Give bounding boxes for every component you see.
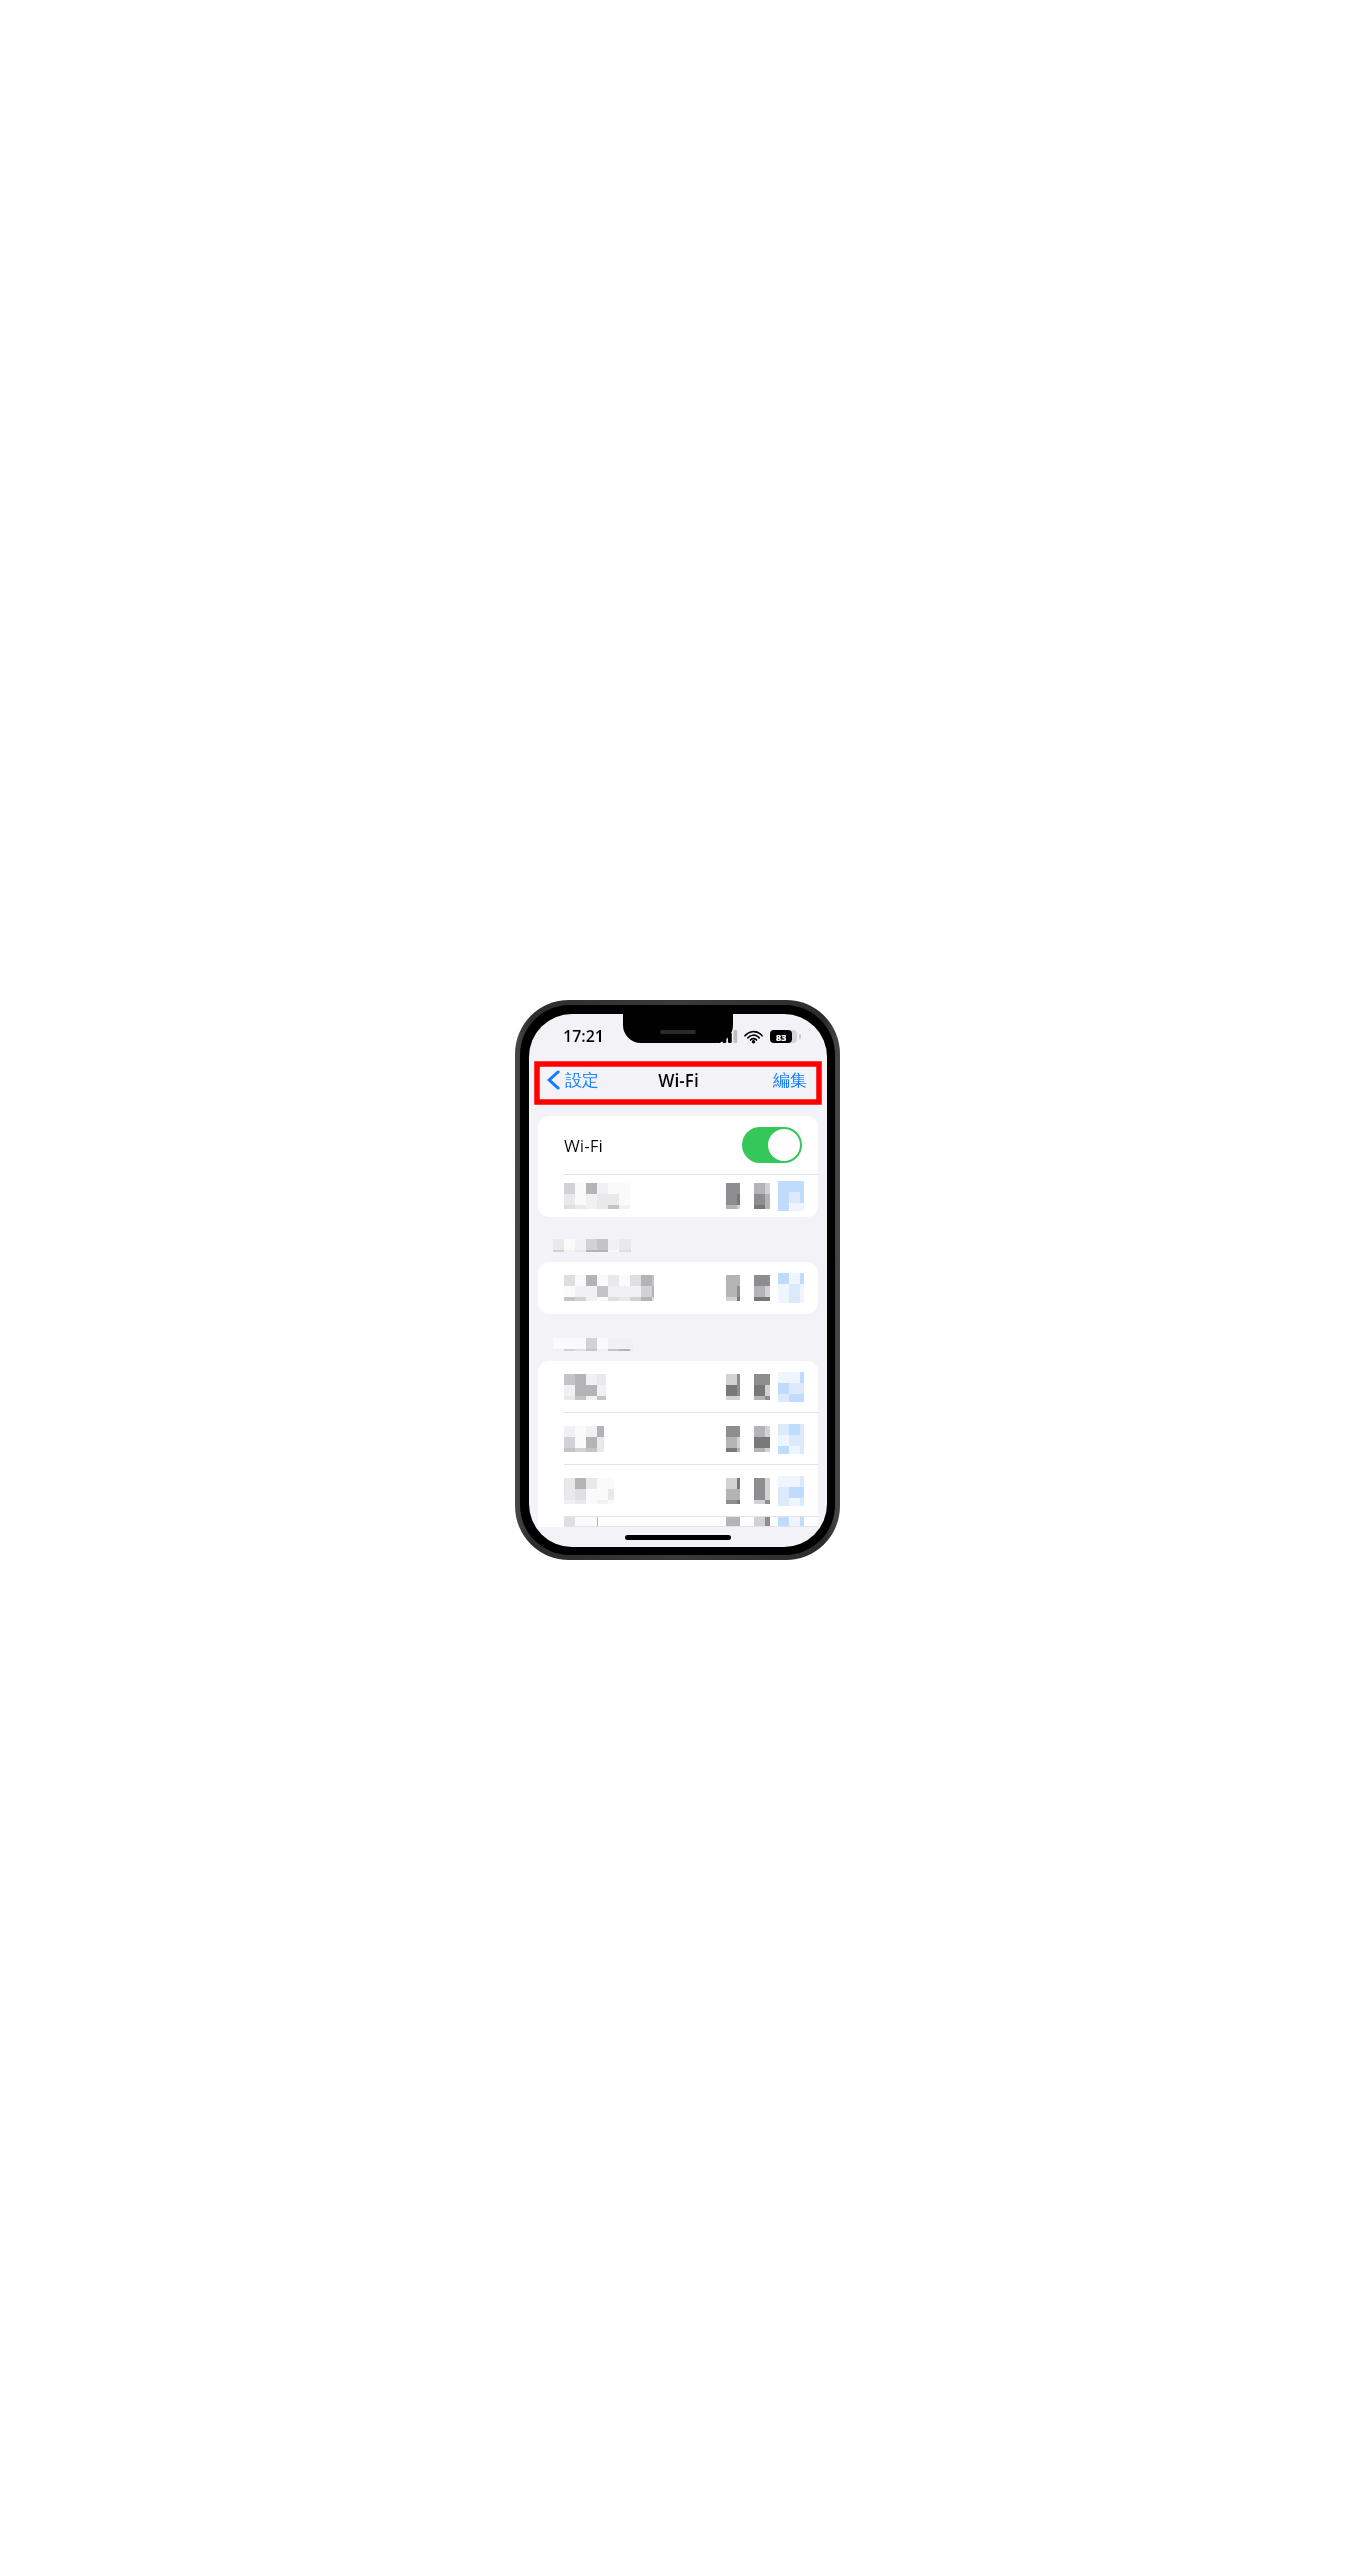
button[interactable]: [538, 1413, 818, 1465]
button[interactable]: [538, 1361, 818, 1413]
staticText: 設定: [565, 1070, 599, 1091]
staticText: Wi-Fi: [564, 1134, 603, 1157]
staticText: 17:21: [563, 1025, 605, 1047]
button[interactable]: [538, 1465, 818, 1517]
button[interactable]: [538, 1517, 818, 1527]
staticText: 83: [776, 1031, 787, 1043]
button[interactable]: [538, 1262, 818, 1314]
button[interactable]: Wi-Fi: [538, 1116, 818, 1174]
button[interactable]: Wi-Fi toggle: [742, 1127, 802, 1163]
staticText: 編集: [773, 1070, 807, 1091]
button[interactable]: 設定: [547, 1069, 599, 1091]
button[interactable]: 編集: [773, 1070, 807, 1091]
button[interactable]: [538, 1175, 818, 1217]
staticText: Wi-Fi: [658, 1069, 699, 1092]
